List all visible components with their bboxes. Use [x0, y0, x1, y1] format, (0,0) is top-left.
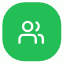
button[interactable]: Contacts — [0, 0, 64, 64]
